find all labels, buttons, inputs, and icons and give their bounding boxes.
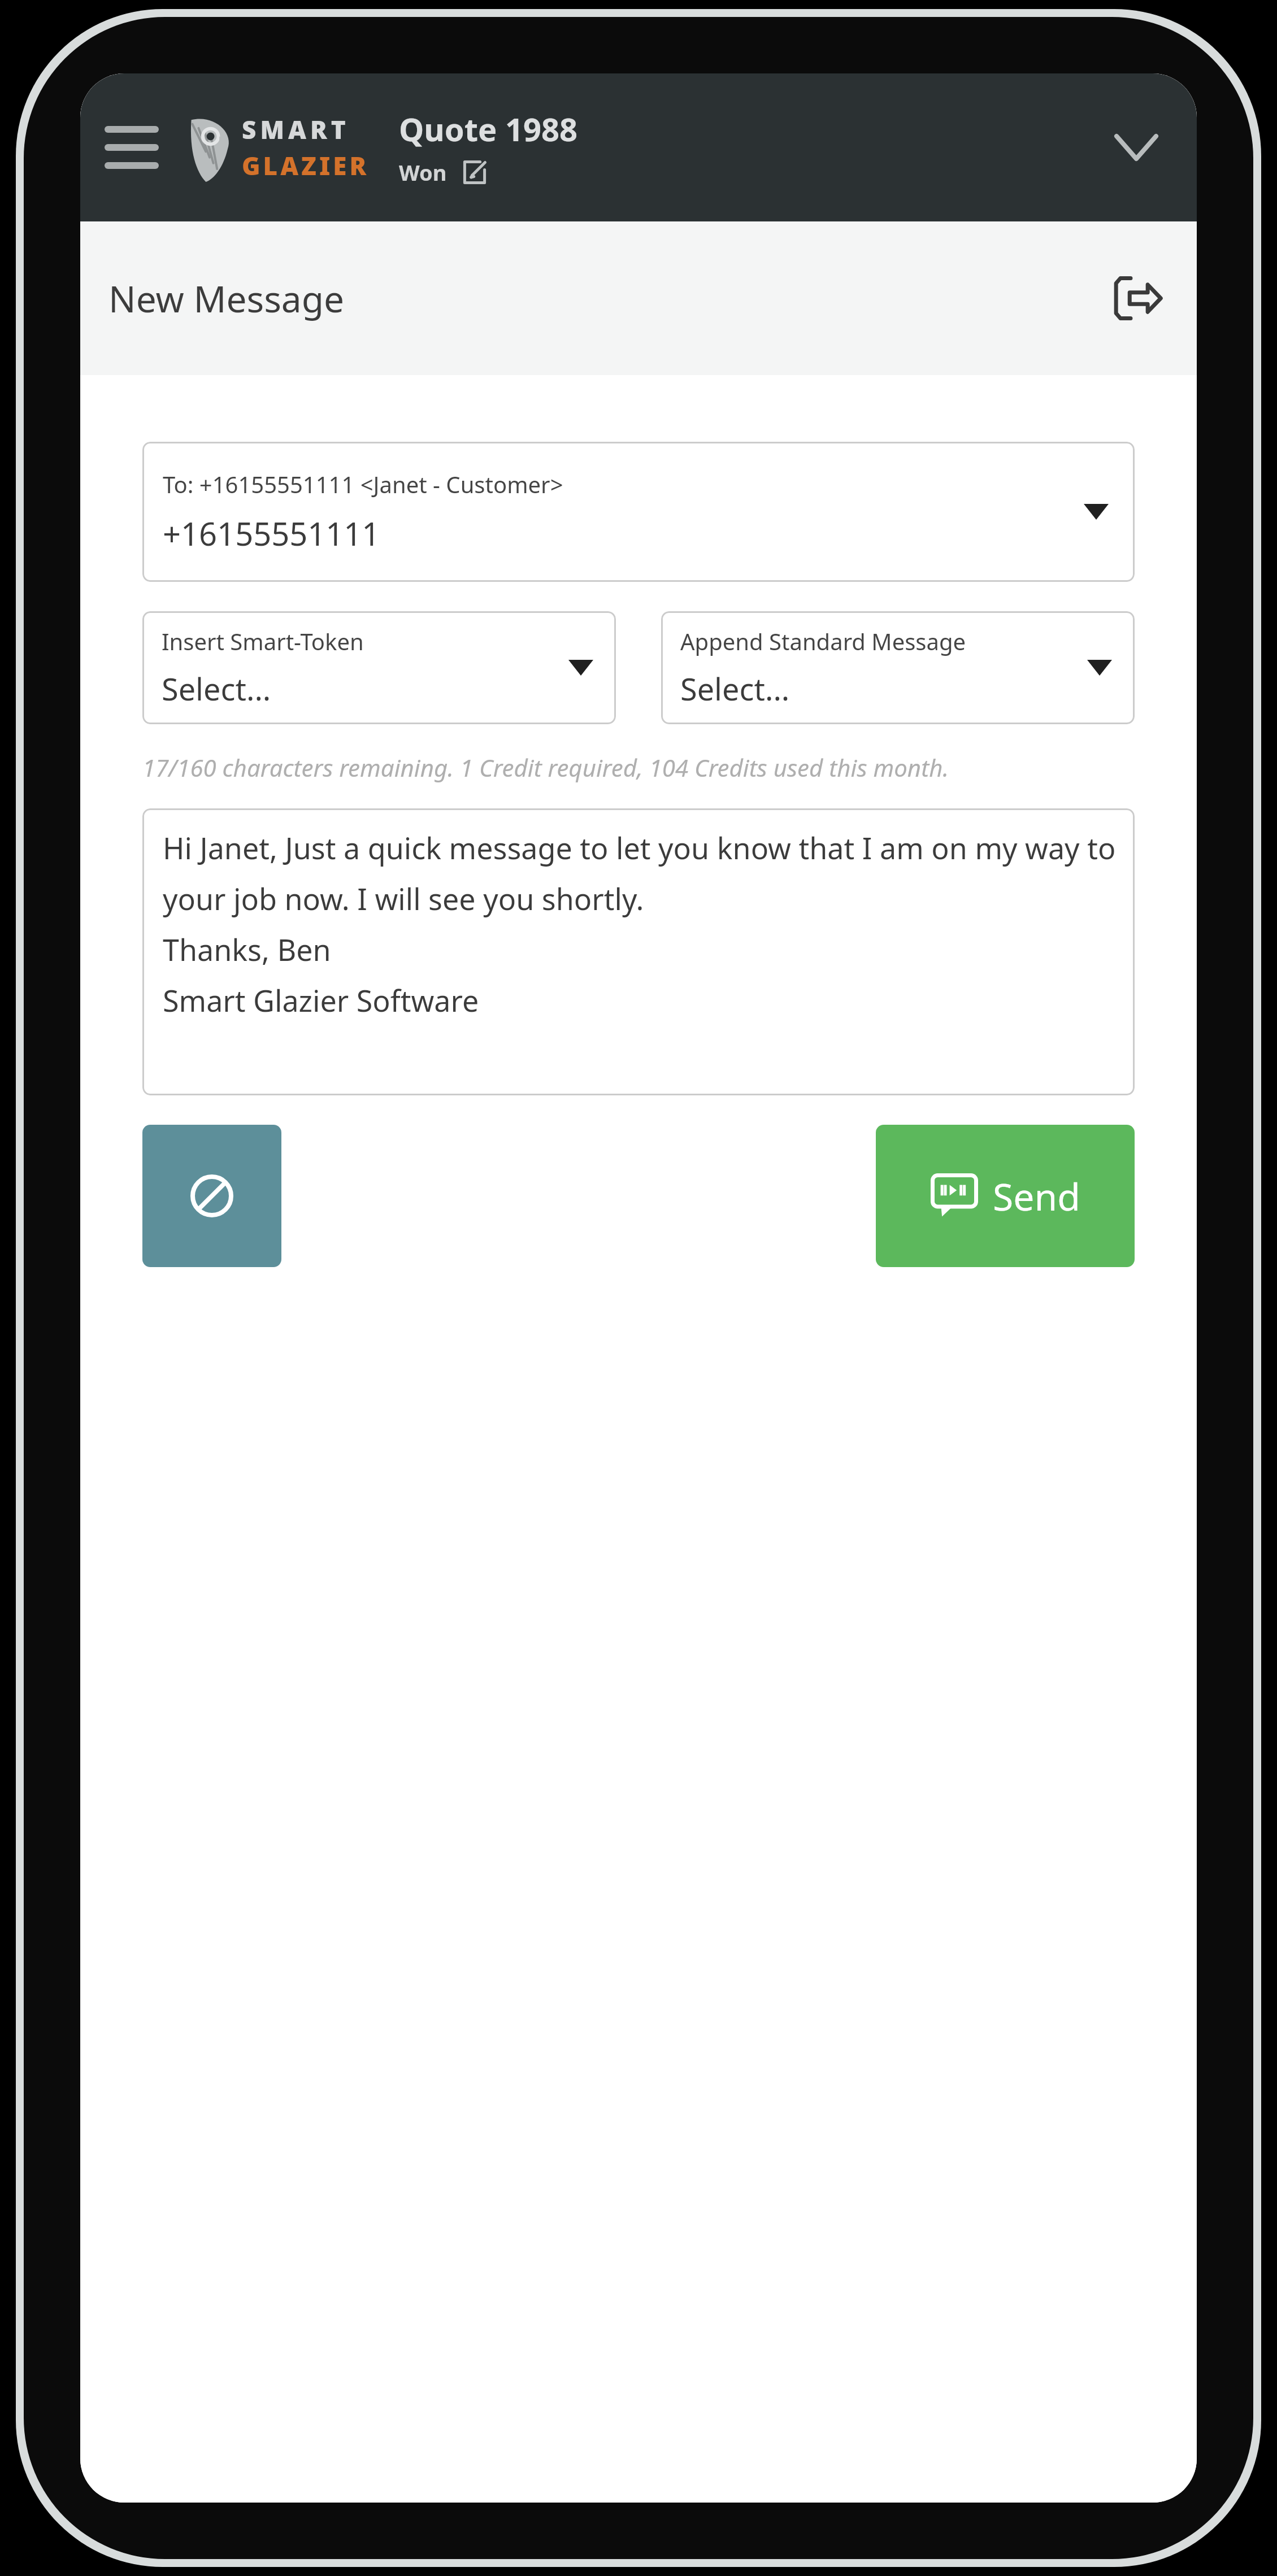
staticText: Insert Smart-Token [162,626,364,656]
button[interactable]: Open navigation menu [96,111,167,184]
button[interactable]: Insert Smart-Token [142,611,616,724]
button[interactable]: Expand [1103,114,1170,181]
staticText: Won [399,158,447,187]
button[interactable]: To: +16155551111 <Janet - Customer> [142,442,1135,582]
staticText: 17/160 characters remaining. 1 Credit re… [142,751,949,784]
button[interactable]: Send [876,1125,1135,1267]
staticText: Send [993,1170,1080,1221]
button[interactable]: Hi Janet, Just a quick message to let yo… [142,808,1135,1095]
staticText: To: +16155551111 <Janet - Customer> [163,469,563,499]
staticText: Select... [162,668,271,710]
staticText: GLAZIER [242,149,370,182]
button[interactable]: Edit quote status [459,157,490,188]
button[interactable]: Cancel message [142,1125,281,1267]
staticText: Quote 1988 [399,107,578,150]
staticText: Select... [680,668,790,710]
staticText: Append Standard Message [680,626,966,656]
button[interactable]: Log out [1101,262,1174,335]
staticText: New Message [108,274,345,323]
staticText: SMART [242,112,350,146]
staticText: Hi Janet, Just a quick message to let yo… [163,828,1118,1020]
button[interactable]: Append Standard Message [661,611,1135,724]
staticText: +16155551111 [163,512,380,555]
